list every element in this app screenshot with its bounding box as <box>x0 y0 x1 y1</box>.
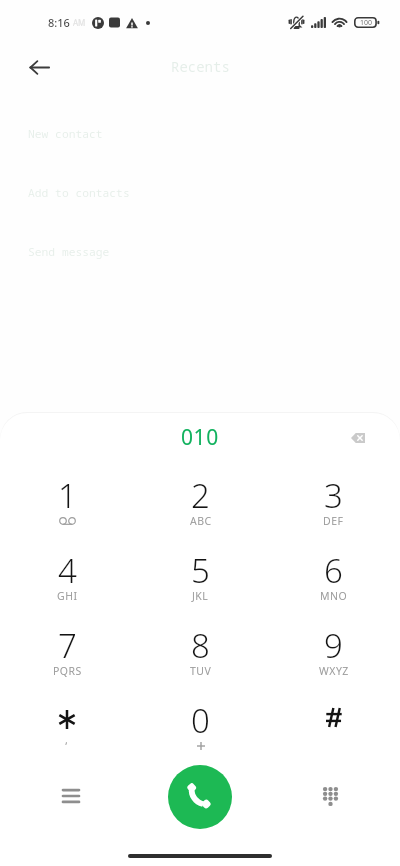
button[interactable]: Call <box>168 765 232 829</box>
button[interactable]: 8 <box>134 610 267 685</box>
button[interactable]: Add to contacts <box>28 184 400 201</box>
button[interactable]: 2 <box>134 460 267 535</box>
staticText: AM <box>73 17 86 28</box>
staticText: GHI <box>57 589 78 603</box>
staticText: 0 <box>191 698 210 743</box>
staticText: 5 <box>191 548 210 593</box>
button[interactable]: 4 <box>0 535 134 610</box>
button[interactable]: 3 <box>267 460 400 535</box>
staticText: Send message <box>28 244 110 259</box>
staticText: 6 <box>324 548 343 593</box>
staticText: 010 <box>181 423 219 452</box>
staticText: 4 <box>58 548 77 593</box>
button[interactable]: 6 <box>267 535 400 610</box>
button[interactable] <box>267 685 400 760</box>
staticText: PQRS <box>53 664 82 678</box>
staticText: 2 <box>191 473 210 518</box>
staticText: MNO <box>320 589 348 603</box>
button[interactable]: 0 <box>134 685 267 760</box>
button[interactable]: 7 <box>0 610 134 685</box>
staticText: , <box>65 733 69 747</box>
staticText: TUV <box>190 664 212 678</box>
staticText: 7 <box>58 623 77 668</box>
button[interactable]: Send message <box>28 243 400 260</box>
staticText: WXYZ <box>319 664 349 678</box>
staticText: 1 <box>58 473 77 518</box>
staticText: Recents <box>171 57 230 76</box>
button[interactable]: Back <box>19 47 59 87</box>
button[interactable]: , <box>0 685 134 760</box>
button[interactable]: Backspace <box>340 420 376 456</box>
button[interactable]: Dialpad <box>310 776 350 816</box>
staticText: 100 <box>360 18 373 28</box>
button[interactable]: 9 <box>267 610 400 685</box>
staticText: 3 <box>324 473 343 518</box>
staticText: 8:16 <box>48 15 70 30</box>
staticText: DEF <box>323 514 344 528</box>
button[interactable]: 1 <box>0 460 134 535</box>
staticText: New contact <box>28 126 103 141</box>
staticText: 9 <box>324 623 343 668</box>
staticText: Add to contacts <box>28 185 130 200</box>
staticText: JKL <box>192 589 209 603</box>
staticText: 8 <box>191 623 210 668</box>
button[interactable]: 5 <box>134 535 267 610</box>
button[interactable]: Call log <box>51 776 91 816</box>
staticText: ABC <box>190 514 212 528</box>
